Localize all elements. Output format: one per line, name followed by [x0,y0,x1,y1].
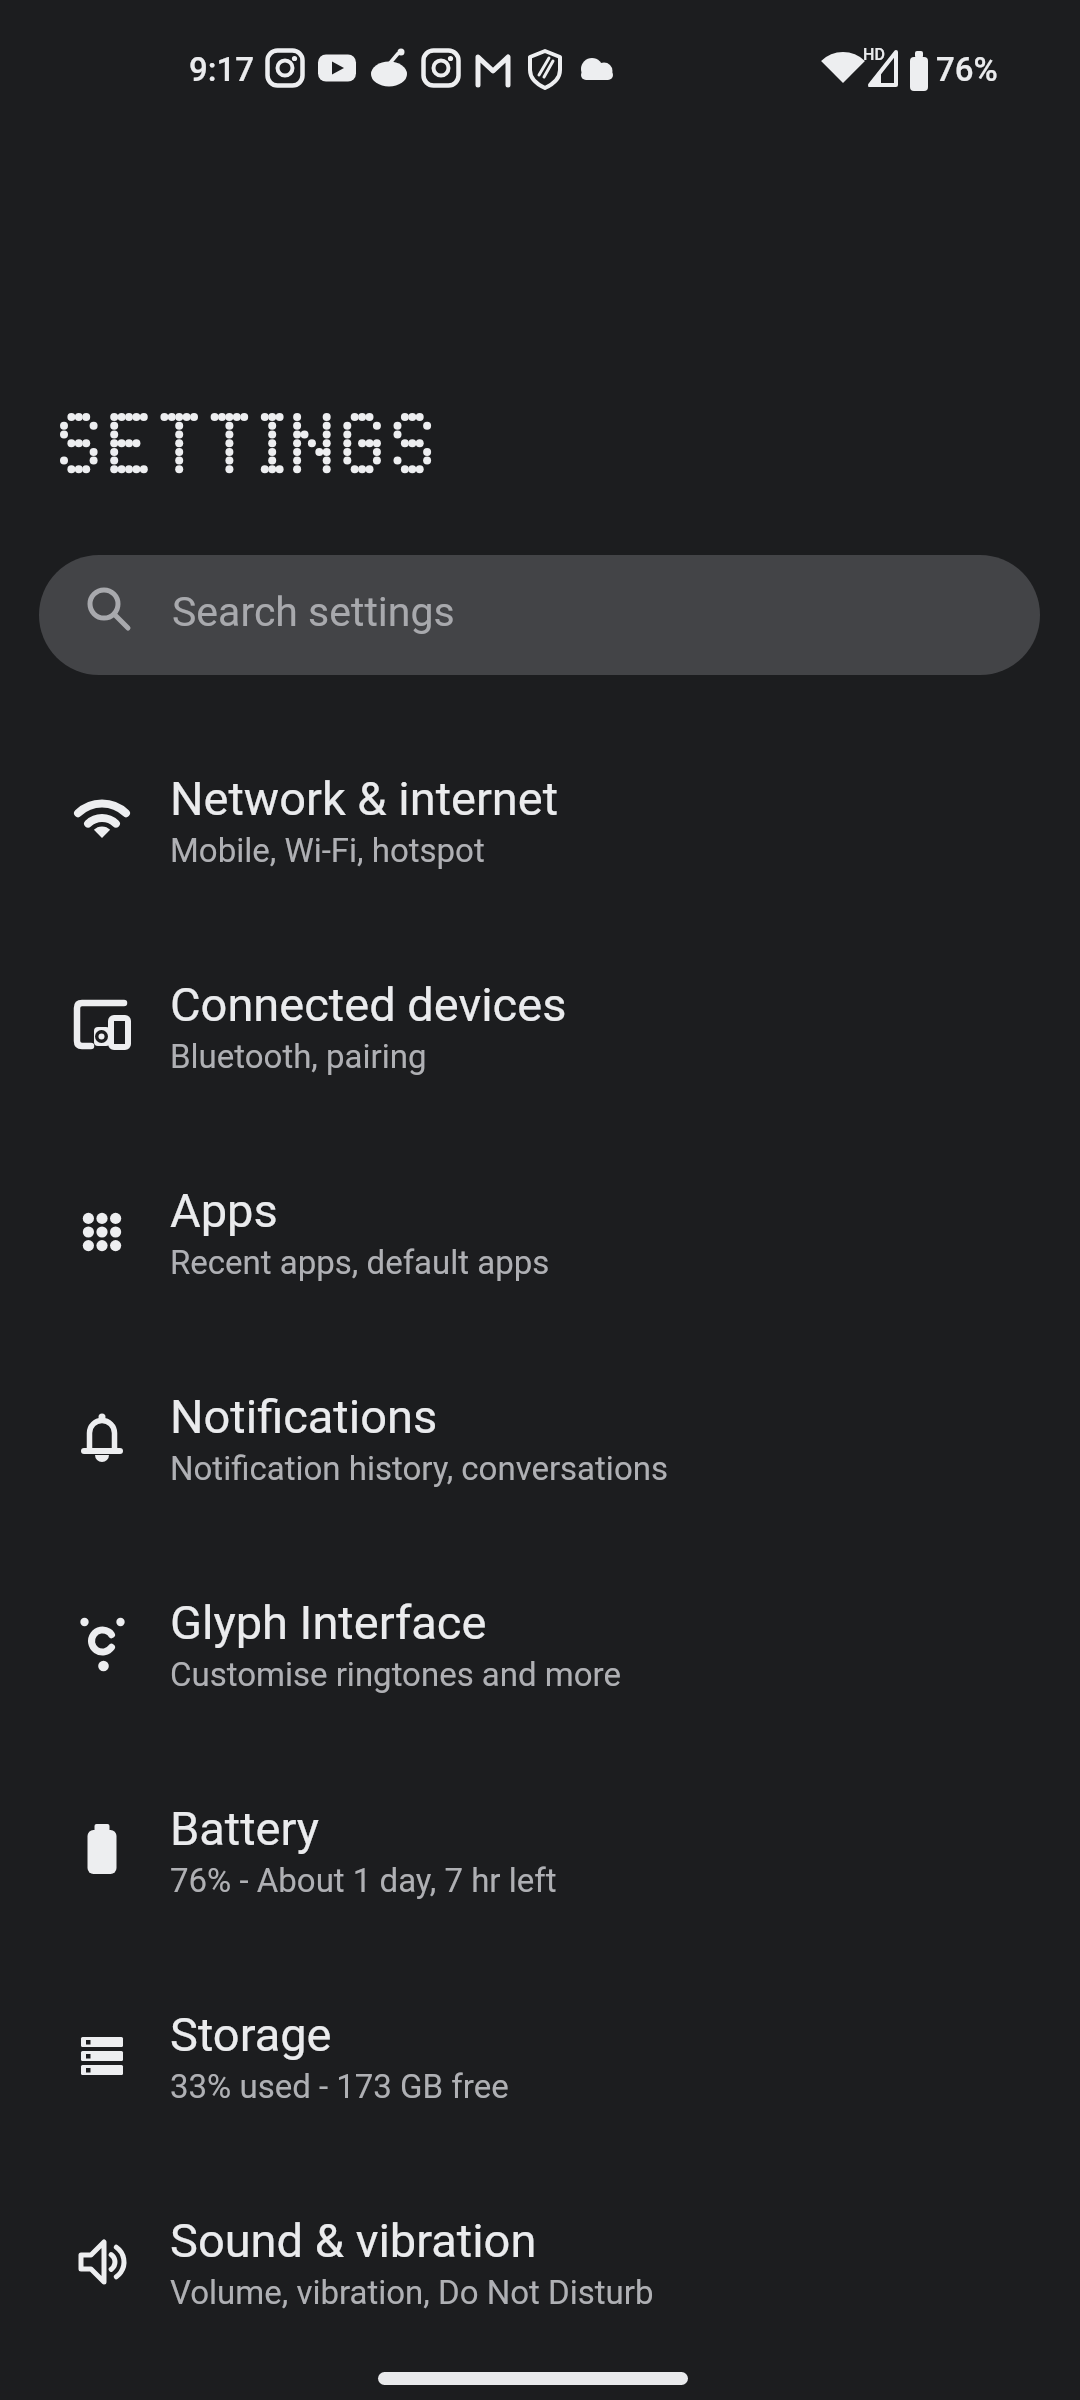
staticText: 76% [936,50,998,89]
staticText: Apps [170,1183,278,1238]
staticText: Bluetooth, pairing [170,1037,427,1076]
staticText: Connected devices [170,977,567,1032]
staticText: Sound & vibration [170,2213,537,2268]
button[interactable]: Battery [0,1748,1080,1954]
staticText: Search settings [172,588,455,636]
button[interactable]: Sound & vibration [0,2160,1080,2366]
staticText: Mobile, Wi-Fi, hotspot [170,831,485,870]
staticText: Customise ringtones and more [170,1655,621,1694]
staticText: Notification history, conversations [170,1449,668,1488]
button[interactable]: Glyph Interface [0,1542,1080,1748]
button[interactable]: Connected devices [0,924,1080,1130]
staticText: Glyph Interface [170,1595,487,1650]
staticText: 33% used - 173 GB free [170,2067,509,2106]
staticText: Network & internet [170,771,559,826]
button[interactable] [39,555,1040,675]
staticText: Battery [170,1801,320,1856]
button[interactable]: Apps [0,1130,1080,1336]
button[interactable]: Network & internet [0,718,1080,924]
button[interactable]: Notifications [0,1336,1080,1542]
button[interactable]: Storage [0,1954,1080,2160]
staticText: 9:17 [189,50,255,89]
staticText: 76% - About 1 day, 7 hr left [170,1861,557,1900]
staticText: Volume, vibration, Do Not Disturb [170,2273,654,2312]
staticText: Storage [170,2007,332,2062]
staticText: Recent apps, default apps [170,1243,550,1282]
staticText: HD [863,45,885,64]
staticText: Notifications [170,1389,438,1444]
